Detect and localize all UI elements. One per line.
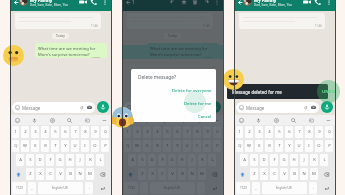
button[interactable]: Group photo [19, 0, 28, 6]
button[interactable]: Delete [189, 0, 200, 7]
button[interactable]: Z [138, 168, 146, 180]
button[interactable]: B [66, 168, 74, 180]
button[interactable]: 6 [61, 126, 69, 138]
button[interactable]: Settings [48, 116, 56, 124]
button[interactable]: Search [289, 116, 297, 124]
button[interactable]: Shift [12, 168, 24, 180]
button[interactable]: X [260, 168, 268, 180]
button[interactable]: U [295, 140, 303, 152]
button[interactable]: More options [211, 0, 222, 7]
button[interactable]: Voice input [254, 116, 262, 124]
button[interactable]: V [280, 168, 288, 180]
button[interactable]: Y [61, 140, 69, 152]
button[interactable]: D [260, 154, 268, 166]
button[interactable]: Voice message [209, 101, 221, 113]
button[interactable]: Delete for me [131, 98, 216, 109]
button[interactable]: A [128, 154, 136, 166]
button[interactable]: 4 [265, 126, 273, 138]
button[interactable]: Voice message [97, 101, 109, 113]
button[interactable]: ?123 [12, 182, 26, 194]
button[interactable]: Group photo [243, 0, 252, 6]
button[interactable]: Shift [124, 168, 136, 180]
button[interactable]: 0 [325, 126, 333, 138]
button[interactable]: 7 [295, 126, 303, 138]
button[interactable]: C [46, 168, 54, 180]
button[interactable]: A [16, 154, 24, 166]
button[interactable]: E [255, 140, 263, 152]
button[interactable]: J [76, 154, 84, 166]
button[interactable]: Enter [319, 182, 333, 194]
button[interactable]: Settings [160, 116, 168, 124]
button[interactable]: W [245, 140, 253, 152]
button[interactable]: Stickers [83, 116, 91, 124]
button[interactable]: L [208, 154, 216, 166]
button[interactable]: English (US) [150, 182, 195, 194]
button[interactable]: Enter [95, 182, 109, 194]
button[interactable]: Y [173, 140, 181, 152]
button[interactable]: 3 [143, 126, 151, 138]
button[interactable]: Video call [77, 0, 88, 7]
button[interactable]: Q [12, 140, 19, 152]
button[interactable]: 8 [305, 126, 313, 138]
button[interactable]: F [270, 154, 278, 166]
button[interactable]: Cancel [131, 111, 216, 122]
button[interactable]: Back [235, 0, 243, 6]
button[interactable]: E [31, 140, 39, 152]
button[interactable]: P [213, 140, 221, 152]
button[interactable]: More [100, 116, 108, 124]
button[interactable]: N [300, 168, 308, 180]
button[interactable]: 9 [91, 126, 99, 138]
button[interactable]: 6 [285, 126, 293, 138]
button[interactable]: T [51, 140, 59, 152]
button[interactable]: 9 [203, 126, 211, 138]
button[interactable]: C [270, 168, 278, 180]
button[interactable]: Backspace [208, 168, 221, 180]
button[interactable]: N [76, 168, 84, 180]
button[interactable]: V [168, 168, 176, 180]
button[interactable]: G [56, 154, 64, 166]
button[interactable]: Voice input [142, 116, 150, 124]
button[interactable]: 1 [236, 126, 243, 138]
button[interactable]: Z [26, 168, 34, 180]
button[interactable]: Emoji [237, 116, 245, 124]
button[interactable]: 2 [21, 126, 29, 138]
button[interactable]: P [325, 140, 333, 152]
button[interactable]: D [148, 154, 156, 166]
button[interactable]: More [324, 116, 332, 124]
button[interactable]: K [198, 154, 206, 166]
button[interactable]: R [265, 140, 273, 152]
button[interactable]: J [300, 154, 308, 166]
button[interactable]: D [36, 154, 44, 166]
button[interactable]: Video call [301, 0, 312, 7]
button[interactable]: 2 [133, 126, 141, 138]
button[interactable]: R [41, 140, 49, 152]
button[interactable]: Q [124, 140, 131, 152]
button[interactable]: Backspace [320, 168, 333, 180]
button[interactable]: 0 [101, 126, 109, 138]
button[interactable]: UNDO [317, 80, 340, 103]
button[interactable]: Emoji [13, 116, 21, 124]
button[interactable]: U [183, 140, 191, 152]
button[interactable]: Call [312, 0, 323, 7]
button[interactable]: Forward [200, 0, 211, 7]
button[interactable]: E [143, 140, 151, 152]
button[interactable]: Back [11, 0, 19, 6]
button[interactable]: Z [250, 168, 258, 180]
button[interactable]: 5 [51, 126, 59, 138]
button[interactable]: I [305, 140, 313, 152]
button[interactable]: Settings [272, 116, 280, 124]
button[interactable]: R [153, 140, 161, 152]
button[interactable]: L [320, 154, 328, 166]
button[interactable]: S [138, 154, 146, 166]
button[interactable]: 4 [153, 126, 161, 138]
button[interactable]: , [252, 182, 260, 194]
button[interactable]: Y [285, 140, 293, 152]
button[interactable]: 7 [183, 126, 191, 138]
button[interactable]: Q [236, 140, 243, 152]
button[interactable]: Message [12, 102, 95, 113]
button[interactable]: More [212, 116, 220, 124]
